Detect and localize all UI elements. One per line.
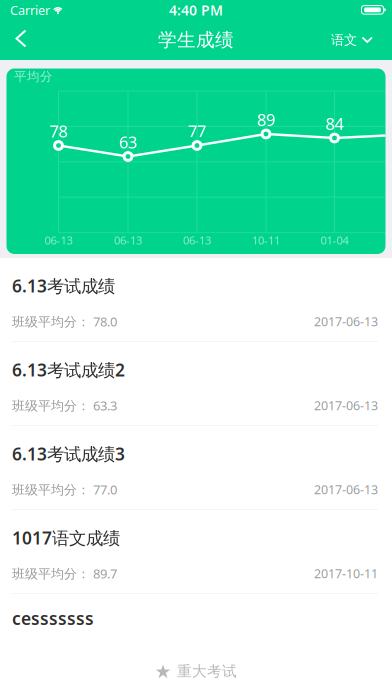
- staticText: 6.13考试成绩: [12, 274, 115, 298]
- button[interactable]: cesssssss: [0, 594, 392, 696]
- staticText: 89: [257, 108, 275, 131]
- staticText: 01-04: [320, 232, 348, 248]
- staticText: 84: [325, 112, 343, 135]
- staticText: 06-13: [183, 232, 211, 248]
- staticText: 平均分: [14, 69, 53, 84]
- staticText: 班级平均分： 78.0: [12, 313, 117, 330]
- staticText: 4:40 PM: [169, 0, 223, 20]
- staticText: 班级平均分： 63.3: [12, 397, 117, 414]
- staticText: 2017-06-13: [314, 313, 378, 330]
- staticText: 2017-10-11: [314, 565, 378, 582]
- staticText: 班级平均分： 89.7: [12, 565, 117, 582]
- staticText: 77: [188, 120, 206, 142]
- button[interactable]: Back: [0, 20, 44, 60]
- staticText: 重大考试: [177, 662, 237, 681]
- staticText: 78: [49, 120, 67, 142]
- staticText: 6.13考试成绩2: [12, 358, 125, 382]
- staticText: 63: [119, 131, 137, 153]
- button[interactable]: 6.13考试成绩2: [0, 342, 392, 426]
- staticText: 1017语文成绩: [12, 526, 120, 550]
- staticText: 10-11: [252, 232, 280, 248]
- staticText: 语文: [331, 32, 357, 48]
- staticText: 学生成绩: [158, 28, 234, 52]
- button[interactable]: 6.13考试成绩: [0, 258, 392, 342]
- staticText: 2017-06-13: [314, 397, 378, 414]
- button[interactable]: 语文: [319, 20, 392, 60]
- staticText: 06-13: [44, 232, 72, 248]
- button[interactable]: 1017语文成绩: [0, 510, 392, 594]
- staticText: 06-13: [114, 232, 142, 248]
- button[interactable]: 6.13考试成绩3: [0, 426, 392, 510]
- staticText: 6.13考试成绩3: [12, 442, 125, 466]
- staticText: 班级平均分： 77.0: [12, 481, 117, 498]
- staticText: 2017-06-13: [314, 481, 378, 498]
- staticText: Carrier: [10, 1, 50, 19]
- staticText: cesssssss: [12, 606, 94, 630]
